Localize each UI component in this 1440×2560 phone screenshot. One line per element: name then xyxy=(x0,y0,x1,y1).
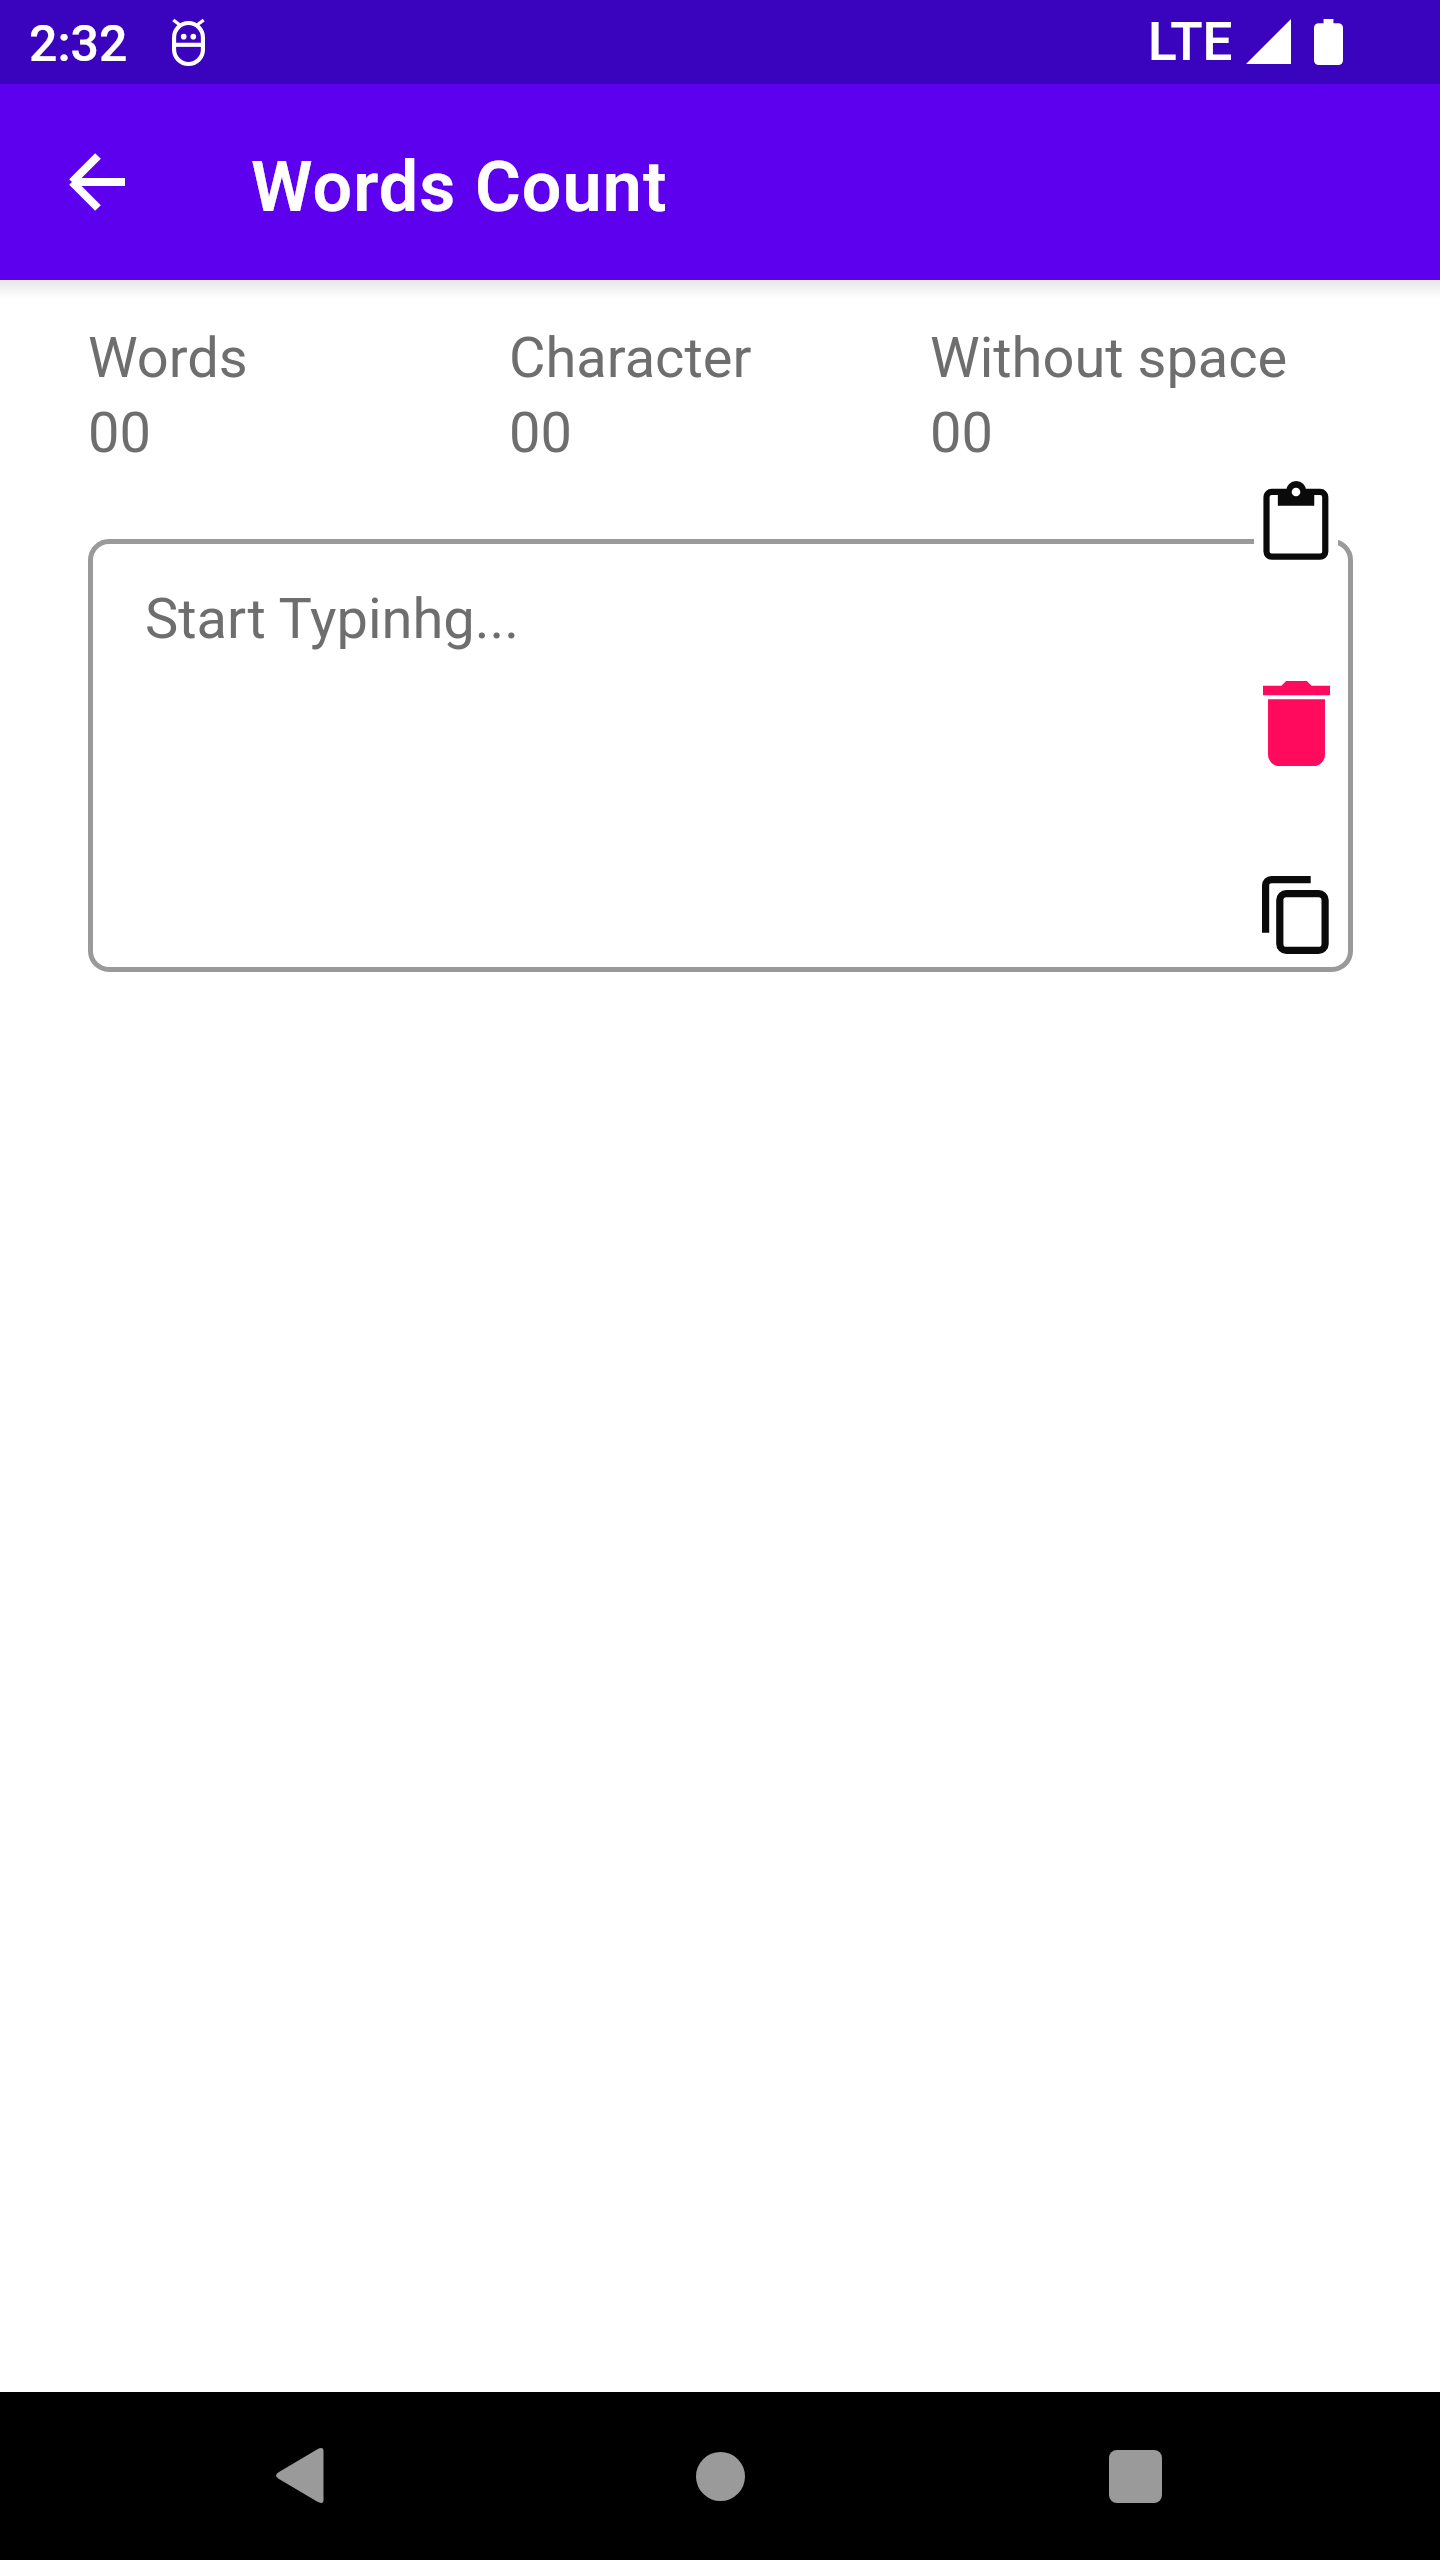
button[interactable]: Delete xyxy=(1246,673,1346,773)
staticText: Words Count xyxy=(251,146,668,228)
button[interactable]: Back xyxy=(40,126,152,238)
button[interactable]: Recent apps xyxy=(1065,2406,1205,2546)
button[interactable]: Home xyxy=(650,2406,790,2546)
staticText: Words xyxy=(88,325,248,391)
button[interactable]: Paste xyxy=(1254,470,1338,570)
staticText: LTE xyxy=(1148,11,1233,73)
staticText: 2:32 xyxy=(29,15,128,74)
staticText: Character xyxy=(509,325,752,391)
button[interactable]: Navigate back xyxy=(229,2405,369,2545)
button[interactable]: Copy xyxy=(1245,865,1345,965)
button[interactable]: Start Typinhg... xyxy=(88,539,1353,972)
staticText: Start Typinhg... xyxy=(145,586,520,652)
staticText: 00 xyxy=(930,400,993,466)
staticText: 00 xyxy=(88,400,151,466)
staticText: 00 xyxy=(509,400,572,466)
staticText: Without space xyxy=(930,325,1288,391)
